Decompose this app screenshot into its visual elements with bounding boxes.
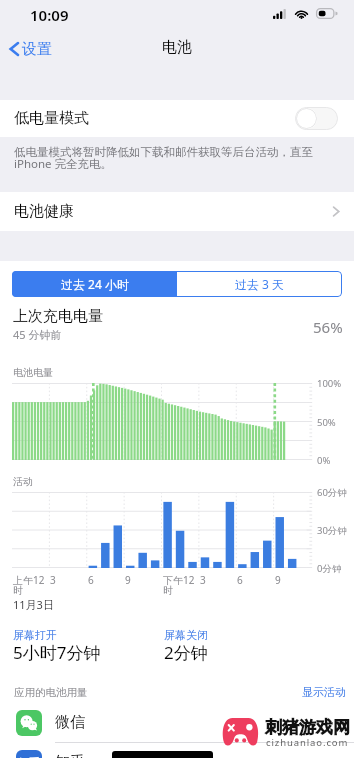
staticText: cizhuanlao.com [266,736,349,749]
staticText: 上次充电电量 [13,307,103,326]
staticText: 活动 [13,475,33,488]
staticText: 设置 [22,40,52,59]
button[interactable]: 设置 [4,34,58,64]
staticText: 低电量模式 [14,109,89,128]
staticText: 60分钟 [317,486,347,499]
staticText: 50% [317,416,336,429]
staticText: 知乎 [18,756,40,758]
button[interactable]: 知乎 [0,743,354,758]
staticText: 上午12 时 [13,573,45,597]
staticText: 低电量模式将暂时降低如下载和邮件获取等后台活动，直至 iPhone 完全充电。 [14,144,342,172]
staticText: 屏幕关闭 [164,628,208,642]
staticText: 9 [125,573,131,587]
staticText: 下午12 时 [163,573,195,597]
staticText: 屏幕打开 [13,628,57,642]
staticText: 过去 3 天 [235,276,285,292]
staticText: 9 [275,573,281,587]
staticText: 应用的电池用量 [14,686,88,699]
staticText: 3 [50,573,56,587]
staticText: 微信 [55,713,85,732]
staticText: 电池 [162,38,192,57]
staticText: 过去 24 小时 [61,276,129,292]
staticText: 0分钟 [317,562,342,575]
staticText: 6 [237,573,243,587]
staticText: 56% [313,317,343,337]
staticText: 0% [317,454,331,467]
staticText: 电池电量 [13,366,53,379]
staticText: 11月3日 [13,597,54,612]
staticText: 电池健康 [14,202,74,221]
staticText: 30分钟 [317,524,347,537]
button[interactable]: 过去 3 天 [177,271,342,297]
staticText: 5小时7分钟 [13,641,101,664]
button[interactable]: 显示活动 [302,685,346,699]
staticText: 刺猪游戏网 [265,717,350,738]
staticText: 6 [88,573,94,587]
staticText: 45 分钟前 [13,327,62,342]
staticText: 知乎 [55,753,85,758]
staticText: 2分钟 [164,641,208,664]
staticText: 10:09 [30,5,69,25]
staticText: 3 [200,573,206,587]
button[interactable]: 低电量模式 [0,100,354,137]
button[interactable]: 电池健康 [0,192,354,231]
button[interactable]: 过去 24 小时 [12,271,177,297]
staticText: 100% [317,377,342,390]
button[interactable]: 微信 [0,703,354,742]
